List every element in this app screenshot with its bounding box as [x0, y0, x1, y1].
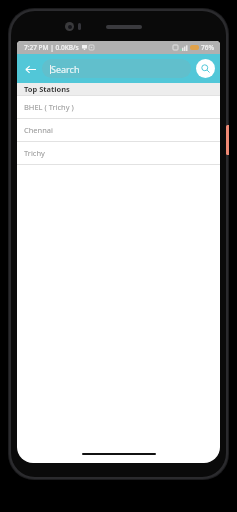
staticText: Search [51, 63, 80, 75]
staticText: Top Stations [24, 84, 70, 94]
staticText: Chennai [24, 125, 54, 135]
button[interactable]: Trichy [17, 142, 220, 164]
staticText: Trichy [24, 148, 45, 158]
button[interactable]: Search [196, 59, 215, 78]
staticText: 7:27 PM | 0.0KB/s [24, 43, 79, 52]
button[interactable]: Chennai [17, 119, 220, 141]
button[interactable]: Search [42, 59, 191, 78]
staticText: 76% [201, 43, 214, 52]
button[interactable]: Back [20, 59, 40, 79]
staticText: BHEL ( Trichy ) [24, 102, 74, 112]
button[interactable]: BHEL ( Trichy ) [17, 96, 220, 118]
